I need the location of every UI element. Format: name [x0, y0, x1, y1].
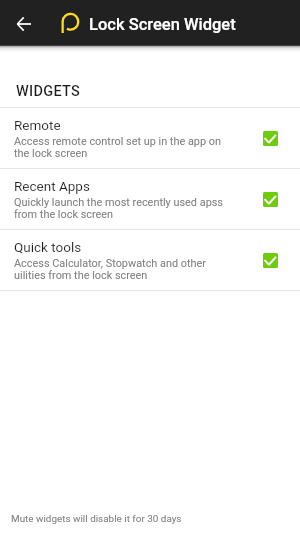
staticText: Quickly launch the most recently used ap…: [14, 196, 227, 221]
staticText: Remote: [14, 117, 61, 133]
staticText: Access Calculator, Stopwatch and other u…: [14, 257, 227, 282]
staticText: Recent Apps: [14, 178, 90, 194]
button[interactable]: Back: [0, 0, 47, 45]
staticText: WIDGETS: [16, 83, 81, 100]
staticText: Lock Screen Widget: [89, 15, 236, 34]
button[interactable]: Quick tools: [0, 230, 300, 290]
staticText: Access remote control set up in the app …: [14, 135, 227, 160]
staticText: Quick tools: [14, 239, 82, 255]
button[interactable]: Recent Apps: [0, 169, 300, 229]
staticText: Mute widgets will disable it for 30 days: [11, 513, 182, 525]
button[interactable]: Remote: [0, 108, 300, 168]
